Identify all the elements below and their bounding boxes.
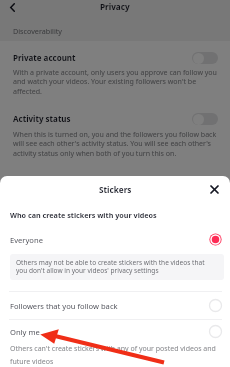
staticText: When this is turned on, you and the foll… [13,129,219,159]
button[interactable]: Close [206,181,223,198]
staticText: Private account [13,52,76,63]
staticText: Others may not be able to create sticker… [16,258,209,275]
button[interactable]: Select [208,324,222,338]
button[interactable]: Back [3,0,21,15]
button[interactable]: Toggle [192,113,218,125]
button[interactable]: Select [208,298,222,312]
staticText: Discoverability [13,26,63,36]
staticText: Everyone [10,235,43,245]
button[interactable]: Toggle [192,52,218,64]
staticText: Privacy [100,1,130,12]
staticText: Who can create stickers with your videos [10,210,157,220]
button[interactable]: Select [208,232,222,246]
staticText: With a private account, only users you a… [13,67,219,97]
staticText: Followers that you follow back [10,301,118,311]
staticText: Only me [10,327,40,337]
staticText: Activity status [13,113,71,124]
staticText: Stickers [99,184,132,195]
staticText: Others can't create stickers with any of… [10,344,219,366]
